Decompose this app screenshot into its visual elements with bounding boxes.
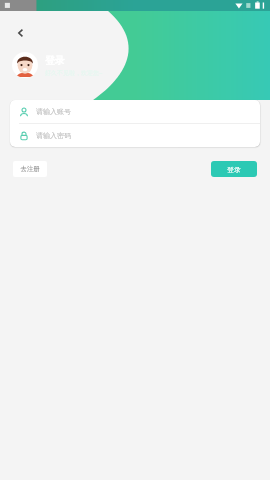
button[interactable]: 登录 — [211, 161, 257, 177]
button[interactable]: 请输入账号 — [10, 100, 260, 123]
staticText: 登录 — [227, 165, 241, 174]
button[interactable]: 去注册 — [13, 161, 47, 177]
button[interactable]: 请输入密码 — [10, 124, 260, 147]
button[interactable]: Back — [8, 20, 34, 46]
staticText: 登录 — [45, 54, 65, 67]
staticText: 好久不见啦，欢迎您~ — [45, 69, 103, 77]
staticText: 去注册 — [20, 165, 40, 173]
staticText: 请输入密码 — [36, 131, 71, 140]
staticText: 请输入账号 — [36, 107, 71, 116]
